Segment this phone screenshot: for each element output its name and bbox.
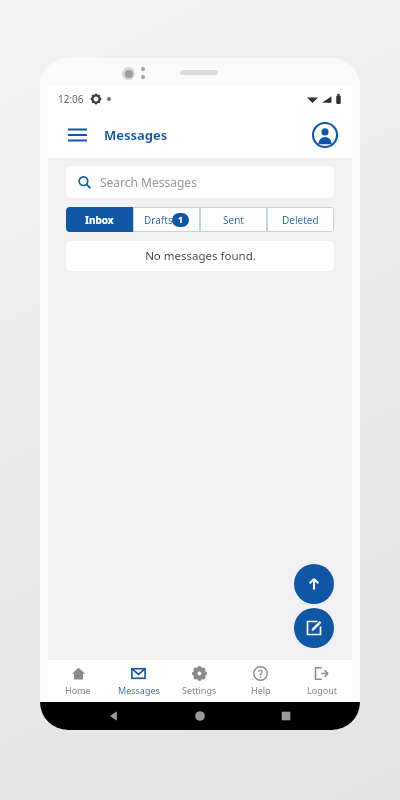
staticText: Messages [104, 126, 168, 144]
button[interactable]: Home [188, 704, 212, 728]
staticText: Home [65, 684, 91, 696]
staticText: 12:06 [58, 92, 84, 106]
staticText: Drafts [144, 213, 173, 227]
staticText: No messages found. [145, 248, 256, 264]
staticText: 1 [178, 214, 183, 226]
button[interactable]: Help [230, 660, 291, 702]
button[interactable]: Drafts [133, 207, 200, 232]
button[interactable]: Scroll to top [294, 564, 334, 604]
button[interactable]: Account [312, 122, 338, 148]
button[interactable]: Open navigation menu [64, 124, 91, 146]
button[interactable]: Compose message [294, 608, 334, 648]
button[interactable]: Messages [108, 660, 169, 702]
staticText: Sent [223, 213, 244, 227]
button[interactable]: Settings [169, 660, 230, 702]
staticText: Logout [307, 684, 337, 696]
staticText: Settings [182, 684, 217, 696]
button[interactable]: Recents [274, 704, 298, 728]
button[interactable]: Search Messages [66, 166, 334, 198]
staticText: Deleted [282, 213, 319, 227]
staticText: Inbox [85, 213, 114, 227]
button[interactable]: Back [102, 704, 126, 728]
button[interactable]: Deleted [267, 207, 334, 232]
button[interactable]: Inbox [66, 207, 133, 232]
button[interactable]: Home [48, 660, 108, 702]
button[interactable]: Logout [291, 660, 352, 702]
staticText: Help [251, 684, 271, 696]
staticText: Search Messages [100, 174, 197, 190]
staticText: Messages [118, 684, 160, 696]
button[interactable]: Sent [200, 207, 267, 232]
